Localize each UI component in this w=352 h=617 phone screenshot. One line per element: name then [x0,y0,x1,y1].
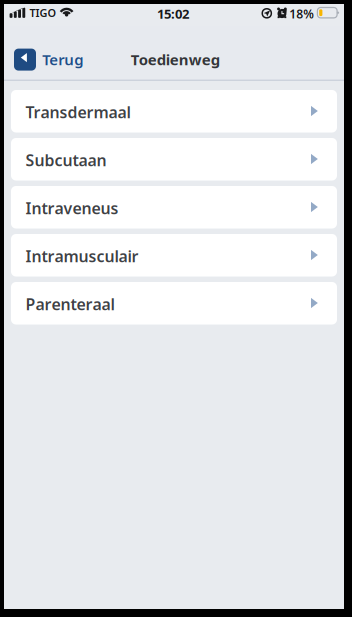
staticText: TIGO [29,5,56,20]
button[interactable]: Transdermaal [11,90,337,132]
staticText: Transdermaal [26,101,131,123]
staticText: Toedienweg [131,49,220,70]
staticText: Parenteraal [26,293,115,315]
button[interactable]: Intraveneus [11,186,337,228]
button[interactable]: Terug [4,32,88,76]
button[interactable]: Subcutaan [11,138,337,180]
staticText: 15:02 [157,5,189,22]
staticText: Intraveneus [26,197,119,219]
staticText: Terug [42,49,83,70]
staticText: 18% [289,6,314,22]
staticText: Intramusculair [26,245,139,267]
staticText: Subcutaan [26,149,107,171]
button[interactable]: Intramusculair [11,234,337,276]
button[interactable]: Parenteraal [11,282,337,324]
